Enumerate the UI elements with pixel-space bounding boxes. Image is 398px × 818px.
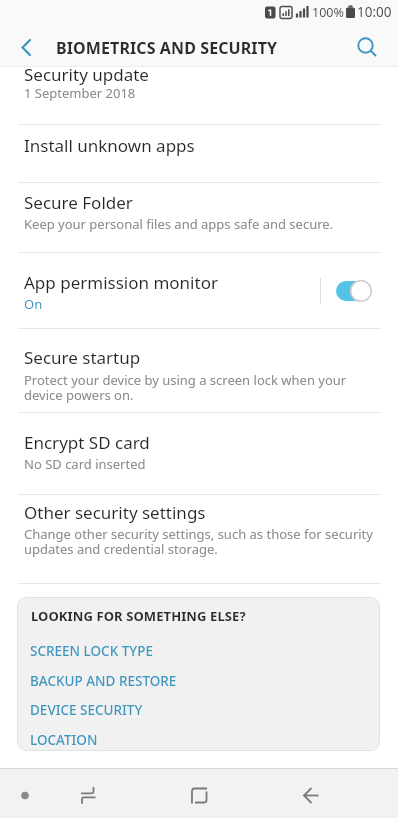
staticText: SCREEN LOCK TYPE [30,642,153,660]
staticText: Install unknown apps [24,134,195,157]
staticText: On [24,295,43,313]
staticText: Encrypt SD card [24,431,150,454]
button[interactable]: Secure startup [0,329,398,412]
staticText: Other security settings [24,501,206,524]
staticText: App permission monitor [24,271,218,294]
button[interactable] [350,30,384,64]
button[interactable] [179,776,219,816]
staticText: DEVICE SECURITY [30,701,143,719]
staticText: LOOKING FOR SOMETHING ELSE? [31,607,246,625]
button[interactable] [68,776,108,816]
button[interactable]: LOCATION [17,726,380,751]
button[interactable]: BACKUP AND RESTORE [17,667,380,696]
button[interactable]: Secure Folder [0,183,398,252]
button[interactable] [336,281,371,301]
staticText: 100% [312,4,344,21]
staticText: No SD card inserted [24,455,146,473]
button[interactable]: SCREEN LOCK TYPE [17,637,380,666]
button[interactable]: App permission monitor [0,253,398,328]
staticText: BIOMETRICS AND SECURITY [56,37,278,59]
button[interactable] [8,32,38,62]
staticText: Change other security settings, such as … [24,525,373,558]
button[interactable] [291,776,331,816]
staticText: Security update [24,63,149,86]
staticText: Secure Folder [24,191,133,214]
button[interactable]: DEVICE SECURITY [17,696,380,725]
button[interactable]: Encrypt SD card [0,413,398,494]
staticText: Secure startup [24,346,141,369]
staticText: 1 September 2018 [24,84,136,102]
staticText: LOCATION [30,731,98,749]
staticText: BACKUP AND RESTORE [30,672,177,690]
staticText: 10:00 [357,3,392,21]
button[interactable]: Install unknown apps [0,125,398,182]
staticText: Keep your personal files and apps safe a… [24,215,334,233]
staticText: Protect your device by using a screen lo… [24,371,347,404]
button[interactable]: Security update [0,67,398,124]
button[interactable]: Other security settings [0,495,398,583]
